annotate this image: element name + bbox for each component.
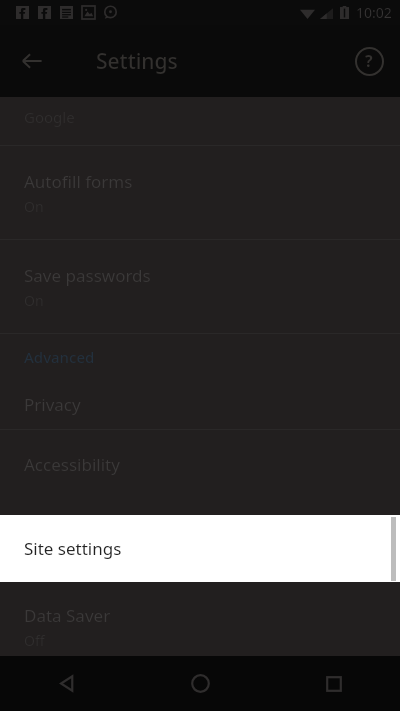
staticText: Autofill forms [24, 170, 133, 193]
button[interactable]: Recent apps [267, 656, 400, 711]
staticText: On [24, 197, 44, 216]
staticText: Google [24, 107, 75, 127]
button[interactable]: Home [134, 656, 267, 711]
staticText: Accessibility [24, 453, 120, 476]
staticText: ? [365, 50, 373, 72]
staticText: Settings [96, 47, 178, 76]
staticText: Data Saver [24, 604, 111, 627]
staticText: Privacy [24, 393, 81, 416]
staticText: Off [24, 631, 45, 650]
button[interactable]: Site settings [0, 515, 400, 582]
button[interactable]: Help and feedback [345, 37, 393, 85]
staticText: On [24, 291, 44, 310]
staticText: 10:02 [356, 3, 392, 22]
button[interactable]: Back [8, 37, 56, 85]
staticText: Site settings [24, 537, 122, 560]
staticText: Advanced [24, 347, 95, 367]
staticText: Save passwords [24, 264, 151, 287]
button[interactable]: Back [0, 656, 134, 711]
